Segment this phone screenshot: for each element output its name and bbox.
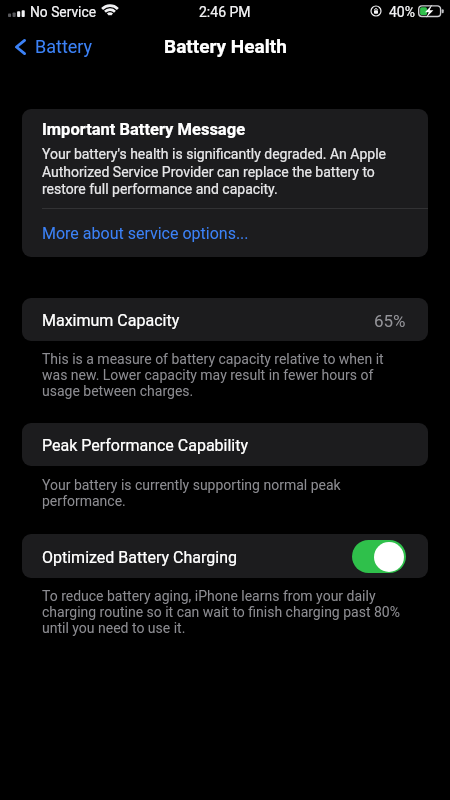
staticText: Important Battery Message <box>42 120 246 139</box>
button[interactable]: Battery <box>0 32 105 61</box>
staticText: Peak Performance Capability <box>42 436 249 455</box>
staticText: Battery Health <box>164 35 287 57</box>
staticText: 65% <box>374 311 406 331</box>
staticText: More about service options... <box>42 224 249 243</box>
staticText: Your battery is currently supporting nor… <box>42 477 407 509</box>
staticText: No Service <box>30 4 97 20</box>
staticText: 40% <box>389 4 415 20</box>
staticText: To reduce battery aging, iPhone learns f… <box>42 588 407 636</box>
staticText: Your battery's health is significantly d… <box>42 146 392 197</box>
staticText: 2:46 PM <box>199 4 251 20</box>
staticText: Maximum Capacity <box>42 311 180 330</box>
button[interactable]: Maximum Capacity <box>22 298 428 341</box>
staticText: Optimized Battery Charging <box>42 548 237 567</box>
staticText: Battery <box>35 36 93 57</box>
button[interactable]: Optimized Battery Charging, on <box>352 540 406 573</box>
staticText: This is a measure of battery capacity re… <box>42 351 407 399</box>
button[interactable]: More about service options... <box>22 209 428 257</box>
button[interactable]: Peak Performance Capability <box>22 423 428 466</box>
